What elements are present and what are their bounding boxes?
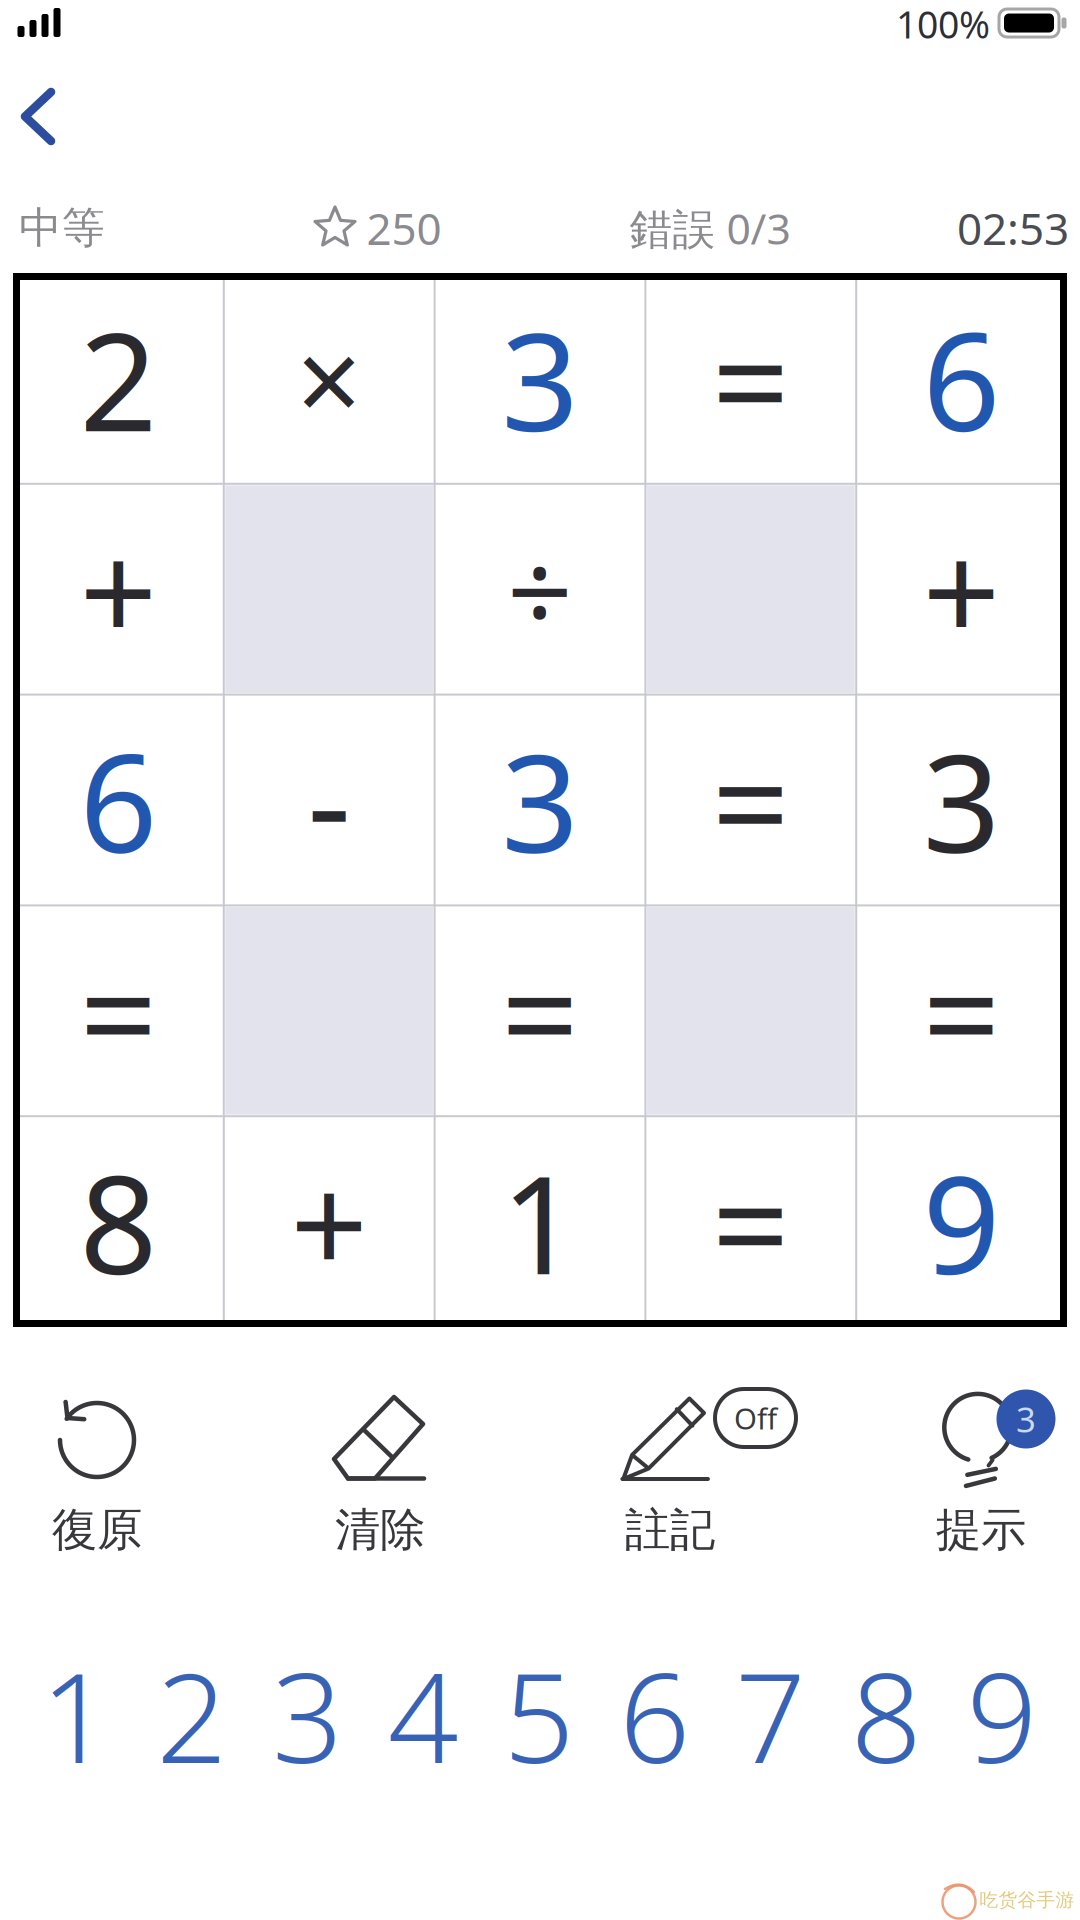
- button[interactable]: =: [440, 910, 640, 1111]
- button[interactable]: 7: [715, 1645, 825, 1785]
- staticText: ÷: [507, 513, 573, 665]
- button[interactable]: =: [18, 910, 219, 1111]
- button[interactable]: 9: [947, 1645, 1057, 1785]
- button[interactable]: 9: [861, 1121, 1062, 1322]
- staticText: 提示: [936, 1502, 1026, 1558]
- staticText: 6: [79, 710, 157, 890]
- staticText: Off: [734, 1398, 777, 1437]
- staticText: =: [712, 1131, 790, 1312]
- button[interactable]: 8: [831, 1645, 941, 1785]
- button[interactable]: 2: [137, 1645, 247, 1785]
- staticText: =: [501, 920, 579, 1101]
- staticText: +: [79, 499, 157, 679]
- staticText: 9: [966, 1633, 1037, 1797]
- button[interactable]: +: [18, 489, 219, 690]
- staticText: 7: [735, 1633, 806, 1797]
- button[interactable]: 6: [861, 278, 1062, 479]
- button[interactable]: +: [861, 489, 1062, 690]
- staticText: 2: [156, 1633, 227, 1797]
- button[interactable]: ÷: [440, 489, 640, 690]
- staticText: 3: [1016, 1396, 1036, 1442]
- button[interactable]: 復原: [7, 1377, 187, 1567]
- staticText: -: [307, 710, 351, 890]
- staticText: 9: [923, 1131, 1001, 1312]
- staticText: +: [290, 1131, 368, 1312]
- staticText: 5: [503, 1633, 574, 1797]
- staticText: 中等: [19, 202, 105, 254]
- staticText: 6: [923, 288, 1001, 469]
- staticText: =: [923, 920, 1001, 1101]
- button[interactable]: 4: [368, 1645, 478, 1785]
- button[interactable]: ×: [229, 278, 430, 479]
- button[interactable]: 3: [252, 1645, 362, 1785]
- staticText: 3: [501, 288, 579, 469]
- staticText: =: [79, 920, 157, 1101]
- button[interactable]: =: [861, 910, 1062, 1111]
- button[interactable]: 3: [440, 278, 640, 479]
- staticText: +: [923, 499, 1001, 679]
- button[interactable]: 1: [21, 1645, 131, 1785]
- staticText: 復原: [52, 1502, 142, 1558]
- staticText: 3: [272, 1633, 343, 1797]
- staticText: ×: [296, 302, 362, 455]
- button[interactable]: 1: [440, 1121, 640, 1322]
- staticText: 註記: [625, 1502, 715, 1558]
- button[interactable]: 2: [18, 278, 219, 479]
- button[interactable]: 3: [440, 700, 640, 900]
- staticText: 3: [923, 710, 1001, 890]
- button[interactable]: 5: [484, 1645, 594, 1785]
- staticText: 8: [851, 1633, 922, 1797]
- button[interactable]: =: [650, 278, 851, 479]
- staticText: 4: [388, 1633, 459, 1797]
- staticText: 8: [79, 1131, 157, 1312]
- staticText: 100%: [896, 0, 990, 49]
- button[interactable]: 清除: [290, 1377, 470, 1567]
- button[interactable]: -: [229, 700, 430, 900]
- button[interactable]: 3: [861, 700, 1062, 900]
- button[interactable]: Off: [580, 1377, 800, 1567]
- staticText: =: [712, 710, 790, 890]
- button[interactable]: 6: [600, 1645, 710, 1785]
- button[interactable]: +: [229, 1121, 430, 1322]
- button[interactable]: 8: [18, 1121, 219, 1322]
- button[interactable]: =: [650, 1121, 851, 1322]
- staticText: 2: [79, 288, 157, 469]
- button[interactable]: =: [650, 700, 851, 900]
- staticText: 02:53: [957, 199, 1069, 257]
- staticText: 清除: [335, 1502, 425, 1558]
- staticText: 錯誤 0/3: [629, 200, 790, 256]
- staticText: 1: [501, 1131, 579, 1312]
- staticText: 6: [619, 1633, 690, 1797]
- staticText: 吃货谷手游: [979, 1888, 1074, 1911]
- button[interactable]: [0, 61, 110, 171]
- button[interactable]: 3: [905, 1377, 1080, 1567]
- button[interactable]: 6: [18, 700, 219, 900]
- staticText: 250: [366, 199, 441, 257]
- staticText: 3: [501, 710, 579, 890]
- staticText: 1: [40, 1633, 111, 1797]
- staticText: =: [712, 288, 790, 469]
